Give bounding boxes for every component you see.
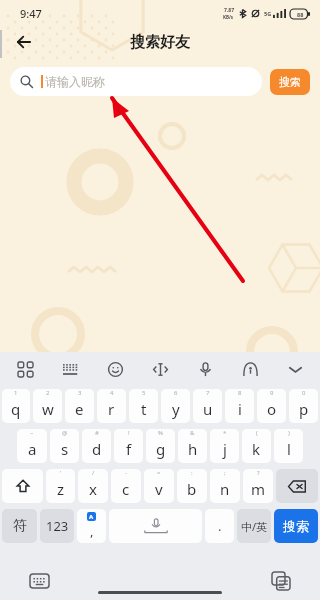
staticText: v	[155, 479, 163, 499]
button[interactable]: 符	[2, 509, 37, 543]
button[interactable]: 表情	[102, 356, 128, 382]
staticText: @	[62, 429, 68, 437]
staticText: a	[28, 439, 37, 459]
button[interactable]: 收起键盘	[282, 356, 308, 382]
button[interactable]: 1	[2, 389, 30, 423]
staticText: 中/英	[241, 519, 268, 534]
staticText: 1	[14, 389, 18, 397]
button[interactable]: 搜索	[274, 509, 318, 543]
staticText: !	[128, 429, 130, 437]
button[interactable]: (	[242, 429, 271, 463]
button[interactable]: 9	[257, 389, 286, 423]
staticText: 请输入昵称	[45, 74, 105, 89]
button[interactable]: &	[178, 429, 207, 463]
staticText: o	[267, 399, 277, 419]
button[interactable]: 键盘切换	[26, 568, 52, 594]
button[interactable]: /	[78, 469, 108, 503]
staticText: 123	[46, 517, 69, 535]
staticText: )	[288, 429, 290, 437]
button[interactable]: =	[144, 469, 174, 503]
button[interactable]: 中/英	[237, 509, 271, 543]
button[interactable]: 7	[193, 389, 222, 423]
staticText: 9	[270, 389, 274, 397]
staticText: ?	[257, 469, 260, 477]
button[interactable]: ;	[210, 469, 240, 503]
button[interactable]: .	[205, 509, 234, 543]
button[interactable]: 3	[65, 389, 94, 423]
staticText: 7.87	[224, 7, 234, 14]
button[interactable]: 2	[33, 389, 62, 423]
button[interactable]: #	[82, 429, 111, 463]
staticText: t	[141, 399, 147, 419]
button[interactable]: 返回	[8, 26, 40, 58]
staticText: c	[122, 479, 130, 499]
button[interactable]: *	[210, 429, 239, 463]
button[interactable]: :	[177, 469, 207, 503]
staticText: k	[252, 439, 261, 459]
staticText: 搜索	[283, 518, 309, 534]
button[interactable]: )	[274, 429, 303, 463]
button[interactable]: 逗号	[77, 509, 106, 543]
staticText: 3	[78, 389, 82, 397]
button[interactable]: '	[46, 469, 75, 503]
button[interactable]: -	[111, 469, 141, 503]
staticText: f	[126, 439, 132, 459]
button[interactable]: 应用	[12, 356, 38, 382]
staticText: s	[61, 439, 69, 459]
button[interactable]: !	[114, 429, 143, 463]
staticText: d	[92, 439, 102, 459]
staticText: x	[89, 479, 97, 499]
button[interactable]: 5	[129, 389, 158, 423]
button[interactable]: 6	[161, 389, 190, 423]
button[interactable]: ~	[17, 429, 47, 463]
staticText: 88	[297, 11, 304, 18]
staticText: 2	[46, 389, 50, 397]
staticText: g	[156, 439, 166, 459]
button[interactable]: %	[146, 429, 175, 463]
staticText: /	[92, 469, 95, 477]
staticText: e	[75, 399, 84, 419]
staticText: ;	[224, 469, 226, 477]
staticText: 4	[110, 389, 114, 397]
staticText: m	[251, 479, 266, 499]
button[interactable]: 键盘	[57, 356, 83, 382]
button[interactable]: 剪贴板	[268, 568, 294, 594]
staticText: A	[89, 513, 94, 521]
button[interactable]: 空格	[109, 509, 202, 543]
staticText: 6	[174, 389, 178, 397]
button[interactable]: 删除	[276, 469, 318, 503]
staticText: 5	[142, 389, 146, 397]
button[interactable]: ?	[243, 469, 273, 503]
staticText: KB/s	[223, 14, 234, 20]
button[interactable]: 语音输入	[192, 356, 218, 382]
button[interactable]: 请输入昵称	[10, 67, 262, 96]
staticText: i	[238, 399, 242, 419]
button[interactable]: 123	[40, 509, 74, 543]
staticText: &	[190, 429, 195, 437]
button[interactable]: 语音助手	[237, 356, 263, 382]
staticText: y	[172, 399, 180, 419]
staticText: -	[125, 469, 127, 477]
staticText: w	[42, 399, 54, 419]
button[interactable]: @	[50, 429, 79, 463]
staticText: =	[157, 469, 161, 477]
staticText: n	[220, 479, 230, 499]
button[interactable]: 切换大写	[2, 469, 43, 503]
button[interactable]: 0	[289, 389, 318, 423]
staticText: b	[187, 479, 197, 499]
staticText: u	[203, 399, 213, 419]
staticText: :	[191, 469, 193, 477]
button[interactable]: 4	[97, 389, 126, 423]
staticText: 搜索	[279, 75, 301, 89]
button[interactable]: 8	[225, 389, 254, 423]
staticText: 9:47	[20, 6, 42, 21]
staticText: 7	[206, 389, 210, 397]
staticText: *	[223, 429, 227, 437]
staticText: q	[11, 399, 21, 419]
staticText: z	[57, 479, 65, 499]
staticText: r	[108, 399, 115, 419]
staticText: 搜索好友	[130, 33, 190, 52]
button[interactable]: 搜索	[270, 69, 310, 95]
button[interactable]: 编辑光标	[147, 356, 173, 382]
staticText: 符	[13, 517, 27, 535]
